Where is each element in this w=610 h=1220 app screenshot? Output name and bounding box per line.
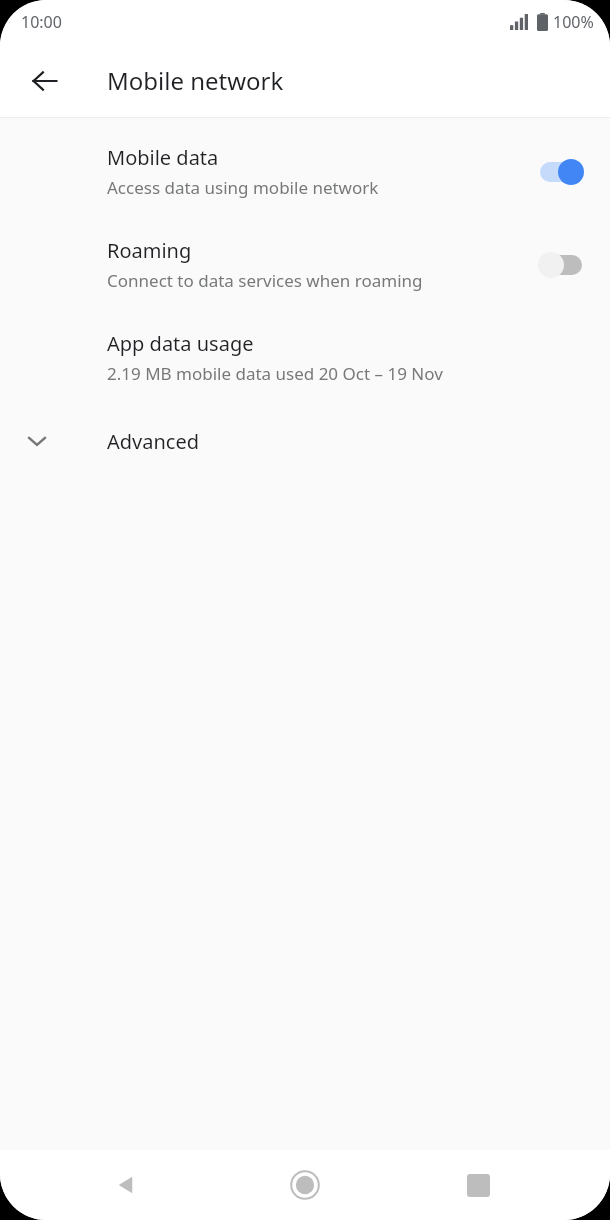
staticText: Roaming [107,237,192,264]
button[interactable]: Recent apps [446,1153,510,1217]
button[interactable]: Mobile data [0,140,610,203]
button[interactable]: App data usage [0,326,610,389]
button[interactable]: Toggle off [530,245,592,285]
staticText: Connect to data services when roaming [107,269,423,292]
button[interactable]: Roaming [0,233,610,296]
button[interactable]: Advanced [0,413,610,469]
staticText: 2.19 MB mobile data used 20 Oct – 19 Nov [107,362,443,385]
staticText: Access data using mobile network [107,176,379,199]
staticText: App data usage [107,330,254,357]
staticText: Mobile data [107,144,219,171]
button[interactable]: Back [13,49,77,113]
button[interactable]: Toggle on [530,152,592,192]
button[interactable]: Back [94,1153,158,1217]
button[interactable]: Home [273,1153,337,1217]
staticText: Advanced [107,428,199,455]
staticText: 100% [553,11,594,33]
staticText: 10:00 [21,11,62,33]
staticText: Mobile network [107,64,284,97]
